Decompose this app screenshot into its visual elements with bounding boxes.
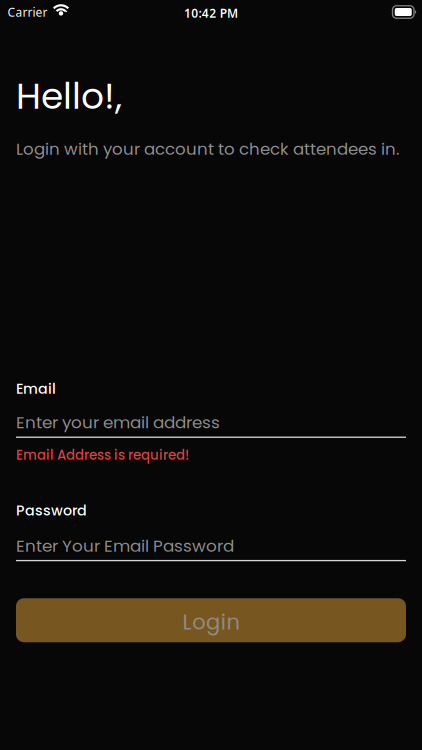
- staticText: Enter your email address: [16, 411, 220, 434]
- button[interactable]: Login: [16, 598, 406, 642]
- staticText: Password: [16, 500, 87, 520]
- button[interactable]: Enter your email address: [0, 411, 422, 438]
- staticText: Hello!,: [16, 71, 122, 121]
- staticText: Enter Your Email Password: [16, 534, 234, 557]
- staticText: Email Address is required!: [16, 446, 189, 464]
- staticText: 10:42 PM: [184, 5, 238, 21]
- button[interactable]: Enter Your Email Password: [0, 534, 422, 561]
- staticText: Email: [16, 379, 56, 399]
- staticText: Login with your account to check attende…: [16, 137, 399, 161]
- staticText: Login: [182, 607, 240, 637]
- staticText: Carrier: [7, 4, 47, 20]
